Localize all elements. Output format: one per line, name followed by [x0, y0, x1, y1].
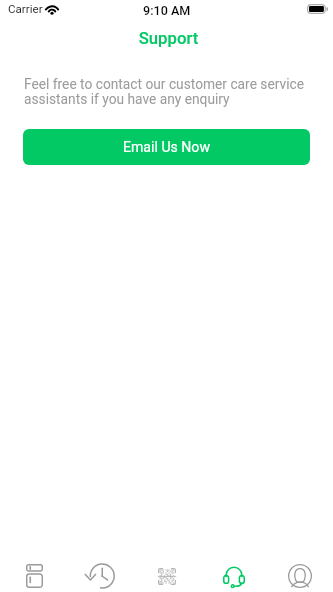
- button[interactable]: Scan: [145, 554, 189, 592]
- button[interactable]: Support: [212, 554, 256, 592]
- staticText: Email Us Now: [123, 139, 210, 156]
- button[interactable]: History: [77, 554, 121, 592]
- staticText: Carrier: [8, 2, 43, 16]
- button[interactable]: Fridge: [12, 554, 56, 592]
- staticText: Support: [4, 29, 333, 49]
- staticText: 9:10 AM: [143, 3, 191, 18]
- button[interactable]: Account: [278, 554, 322, 592]
- button[interactable]: Email Us Now: [23, 129, 310, 165]
- staticText: Feel free to contact our customer care s…: [24, 76, 315, 107]
